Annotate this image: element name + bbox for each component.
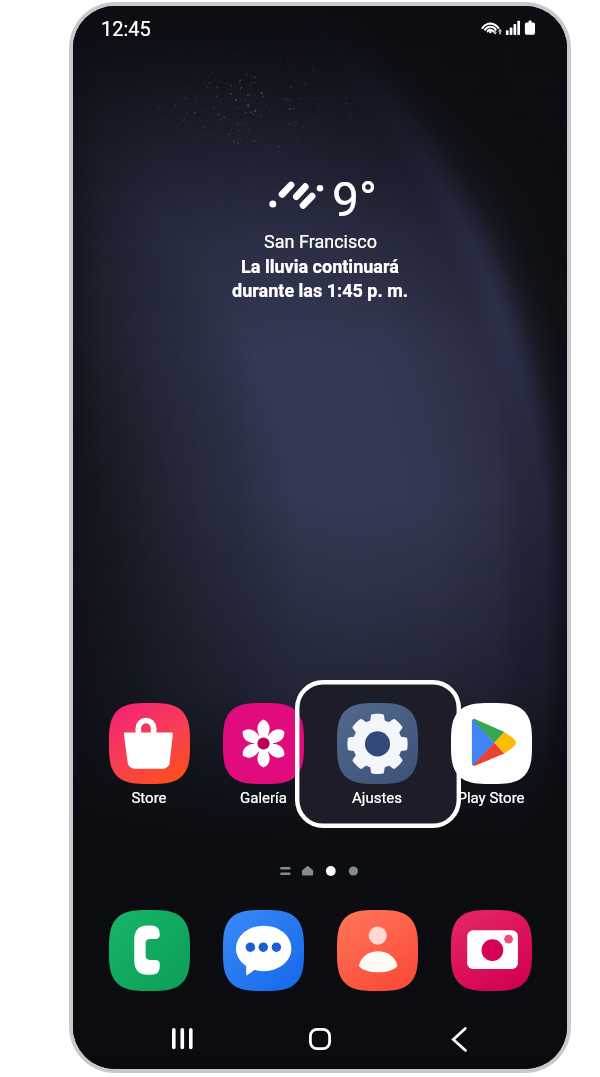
staticText: Store — [131, 789, 167, 807]
staticText: Play Store — [457, 789, 525, 807]
button[interactable]: Recents — [125, 1006, 239, 1069]
button[interactable]: Contacts — [337, 910, 418, 991]
button[interactable]: Back — [401, 1006, 515, 1069]
staticText: 9° — [332, 171, 377, 227]
staticText: San Francisco — [264, 231, 377, 252]
button[interactable]: Home — [263, 1006, 377, 1069]
button[interactable]: Store — [92, 703, 206, 819]
staticText: Ajustes — [352, 789, 402, 807]
staticText: La lluvia continuará durante las 1:45 p.… — [232, 256, 408, 301]
button[interactable]: Galería — [206, 703, 320, 819]
button[interactable]: Camera — [451, 910, 532, 991]
button[interactable]: Ajustes — [320, 703, 434, 819]
button[interactable]: Phone — [109, 910, 190, 991]
button[interactable]: Play Store — [434, 703, 548, 819]
button[interactable]: Messages — [223, 910, 304, 991]
staticText: 12:45 — [101, 17, 151, 40]
staticText: Galería — [240, 789, 287, 807]
